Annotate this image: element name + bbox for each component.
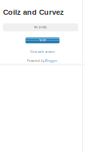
staticText: Blogger.: [45, 59, 58, 63]
button[interactable]: View web version: [30, 50, 55, 53]
staticText: Home: [38, 39, 46, 42]
button[interactable]: Blogger.: [45, 59, 58, 63]
staticText: No posts.: [34, 26, 47, 29]
staticText: View web version: [30, 50, 55, 53]
staticText: Coilz and Curvez: [3, 8, 64, 16]
staticText: Powered by: [27, 59, 44, 63]
button[interactable]: Home: [25, 37, 59, 43]
